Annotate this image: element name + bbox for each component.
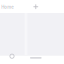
button[interactable]: Add [33,4,38,9]
staticText: Home [1,5,14,10]
button[interactable]: Home [10,54,14,58]
